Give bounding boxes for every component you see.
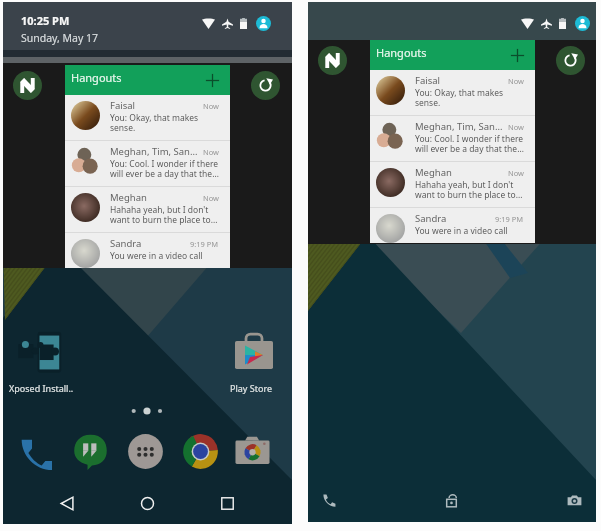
staticText: will ever be a day that the…: [110, 168, 219, 180]
button[interactable]: New conversation: [205, 73, 220, 88]
staticText: Meghan: [110, 191, 202, 204]
button[interactable]: Meghan: [370, 162, 535, 207]
staticText: 9:19 PM: [190, 239, 219, 249]
button[interactable]: Android N: [13, 71, 42, 100]
staticText: 10:25 PM: [21, 13, 70, 28]
button[interactable]: Camera: [560, 486, 588, 514]
staticText: Play Store: [230, 382, 272, 394]
button[interactable]: Sandra: [65, 233, 230, 268]
staticText: Now: [508, 168, 524, 178]
button[interactable]: Back: [53, 489, 81, 517]
staticText: Hahaha yeah, but I don't: [415, 179, 514, 191]
staticText: Now: [508, 76, 524, 86]
staticText: Now: [203, 147, 219, 157]
button[interactable]: Faisal: [370, 70, 535, 115]
button[interactable]: Hangouts: [370, 40, 535, 70]
staticText: sense.: [415, 97, 441, 109]
staticText: Now: [508, 122, 524, 132]
staticText: You: Okay, that makes: [415, 87, 504, 99]
staticText: You were in a video call: [415, 225, 508, 237]
button[interactable]: Play Store: [229, 331, 279, 381]
staticText: Sunday, May 17: [21, 31, 99, 45]
button[interactable]: Chrome: [182, 433, 219, 470]
button[interactable]: Unlock: [437, 486, 465, 514]
staticText: Meghan, Tim, San…: [415, 120, 507, 133]
staticText: Hahaha yeah, but I don't: [110, 204, 209, 216]
staticText: Now: [203, 101, 219, 111]
button[interactable]: Refresh: [556, 46, 585, 75]
button[interactable]: Phone: [15, 433, 52, 470]
button[interactable]: Phone: [315, 486, 343, 514]
staticText: Hangouts: [376, 45, 427, 60]
staticText: You: Cool. I wonder if there: [415, 133, 524, 145]
staticText: Faisal: [415, 74, 507, 87]
staticText: Now: [203, 193, 219, 203]
button[interactable]: Sandra: [370, 208, 535, 243]
button[interactable]: Home: [133, 489, 161, 517]
staticText: want to burn the place to…: [110, 214, 218, 226]
staticText: Xposed Install..: [9, 382, 74, 394]
button[interactable]: New conversation: [510, 48, 525, 63]
button[interactable]: Faisal: [65, 95, 230, 140]
staticText: Sandra: [415, 212, 507, 225]
staticText: You: Okay, that makes: [110, 112, 199, 124]
staticText: 9:19 PM: [495, 214, 524, 224]
button[interactable]: Xposed Installer: [16, 329, 63, 376]
button[interactable]: Apps: [127, 433, 164, 470]
staticText: Meghan, Tim, San…: [110, 145, 202, 158]
staticText: Faisal: [110, 99, 202, 112]
staticText: You: Cool. I wonder if there: [110, 158, 219, 170]
staticText: want to burn the place to…: [415, 189, 523, 201]
staticText: Sandra: [110, 237, 202, 250]
button[interactable]: Recents: [213, 489, 241, 517]
button[interactable]: Android N: [318, 46, 347, 75]
button[interactable]: Camera: [234, 433, 271, 470]
button[interactable]: Hangouts: [65, 65, 230, 95]
staticText: Meghan: [415, 166, 507, 179]
button[interactable]: Meghan: [65, 187, 230, 232]
button[interactable]: Meghan, Tim, San…: [65, 141, 230, 186]
button[interactable]: Hangouts: [72, 433, 109, 470]
button[interactable]: Meghan, Tim, San…: [370, 116, 535, 161]
staticText: You were in a video call: [110, 250, 203, 262]
button[interactable]: Refresh: [251, 71, 280, 100]
staticText: Hangouts: [71, 70, 122, 85]
staticText: sense.: [110, 122, 136, 134]
staticText: will ever be a day that the…: [415, 143, 524, 155]
